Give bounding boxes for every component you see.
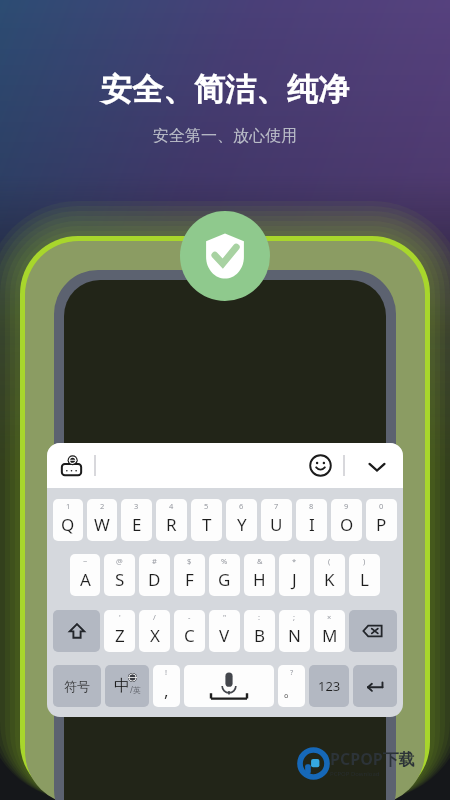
button[interactable]: " [209, 610, 240, 652]
button[interactable]: - [174, 610, 205, 652]
staticText: 1 [66, 501, 71, 511]
staticText: L [360, 568, 369, 591]
staticText: M [322, 624, 338, 647]
staticText: Q [61, 513, 75, 536]
staticText: 123 [318, 677, 341, 695]
button[interactable]: Backspace [349, 610, 397, 652]
staticText: D [148, 568, 161, 591]
staticText: 0 [379, 501, 384, 511]
staticText: I [309, 513, 315, 536]
button[interactable]: @ [104, 554, 135, 596]
staticText: $ [187, 556, 192, 566]
staticText: U [270, 513, 283, 536]
staticText: ( [328, 556, 331, 566]
button[interactable]: & [244, 554, 275, 596]
staticText: ' [119, 612, 121, 622]
staticText: " [223, 612, 227, 622]
button[interactable]: Space, voice input [184, 665, 274, 707]
staticText: * [292, 556, 297, 566]
staticText: 5 [204, 501, 209, 511]
button[interactable]: 7 [261, 499, 292, 541]
staticText: 符号 [64, 678, 90, 694]
staticText: ! [165, 667, 168, 677]
staticText: V [219, 624, 230, 647]
button[interactable]: Enter [353, 665, 397, 707]
staticText: ; [293, 612, 296, 622]
staticText: B [254, 624, 266, 647]
staticText: # [152, 556, 157, 566]
button[interactable]: ( [314, 554, 345, 596]
button[interactable]: ? [278, 665, 305, 707]
staticText: K [324, 568, 335, 591]
button[interactable]: ' [104, 610, 135, 652]
staticText: ) [363, 556, 366, 566]
staticText: O [340, 513, 354, 536]
staticText: 4 [169, 501, 174, 511]
button[interactable]: × [314, 610, 345, 652]
staticText: X [150, 624, 160, 647]
button[interactable]: ) [349, 554, 380, 596]
staticText: C [184, 624, 195, 647]
staticText: ? [290, 667, 294, 677]
staticText: 9 [344, 501, 349, 511]
staticText: ~ [83, 556, 88, 566]
staticText: & [257, 556, 263, 566]
staticText: @ [116, 556, 123, 566]
staticText: : [258, 612, 261, 622]
staticText: PCPOP下载 [330, 748, 415, 770]
button[interactable]: 2 [87, 499, 117, 541]
button[interactable]: # [139, 554, 170, 596]
staticText: F [185, 568, 194, 591]
staticText: G [218, 568, 231, 591]
staticText: % [221, 556, 228, 566]
button[interactable]: 1 [53, 499, 83, 541]
staticText: 安全第一、放心使用 [153, 126, 297, 146]
staticText: N [288, 624, 301, 647]
button[interactable]: ~ [70, 554, 100, 596]
button[interactable]: 4 [156, 499, 187, 541]
button[interactable]: 3 [121, 499, 152, 541]
button[interactable]: ! [153, 665, 180, 707]
staticText: PCPOP Download [330, 770, 380, 778]
staticText: A [80, 568, 91, 591]
button[interactable]: Shift [53, 610, 100, 652]
staticText: Z [115, 624, 125, 647]
staticText: 中 [114, 676, 130, 696]
button[interactable]: 8 [296, 499, 327, 541]
staticText: × [327, 612, 332, 622]
button[interactable]: 6 [226, 499, 257, 541]
button[interactable]: Emoji [309, 454, 332, 477]
button[interactable]: 9 [331, 499, 362, 541]
staticText: 7 [274, 501, 279, 511]
staticText: 8 [309, 501, 314, 511]
button[interactable]: 符号 [53, 665, 101, 707]
staticText: J [292, 568, 297, 591]
button[interactable]: * [279, 554, 310, 596]
button[interactable]: $ [174, 554, 205, 596]
staticText: R [166, 513, 177, 536]
button[interactable]: 0 [366, 499, 397, 541]
staticText: H [253, 568, 266, 591]
staticText: , [164, 679, 169, 702]
button[interactable]: % [209, 554, 240, 596]
button[interactable]: / [139, 610, 170, 652]
button[interactable]: Input method [60, 454, 83, 477]
staticText: / [153, 612, 156, 622]
staticText: E [132, 513, 142, 536]
button[interactable]: : [244, 610, 275, 652]
button[interactable]: Switch Chinese English [105, 665, 149, 707]
button[interactable]: Hide keyboard [366, 456, 388, 478]
staticText: 2 [100, 501, 105, 511]
staticText: P [376, 513, 387, 536]
button[interactable]: 5 [191, 499, 222, 541]
staticText: 安全、简洁、纯净 [101, 70, 349, 109]
staticText: 3 [134, 501, 139, 511]
staticText: /英 [130, 684, 141, 695]
button[interactable]: 123 [309, 665, 349, 707]
staticText: W [94, 513, 110, 536]
staticText: T [202, 513, 212, 536]
button[interactable]: Security shield [180, 211, 270, 301]
button[interactable]: ; [279, 610, 310, 652]
staticText: - [188, 612, 191, 622]
staticText: 6 [239, 501, 244, 511]
